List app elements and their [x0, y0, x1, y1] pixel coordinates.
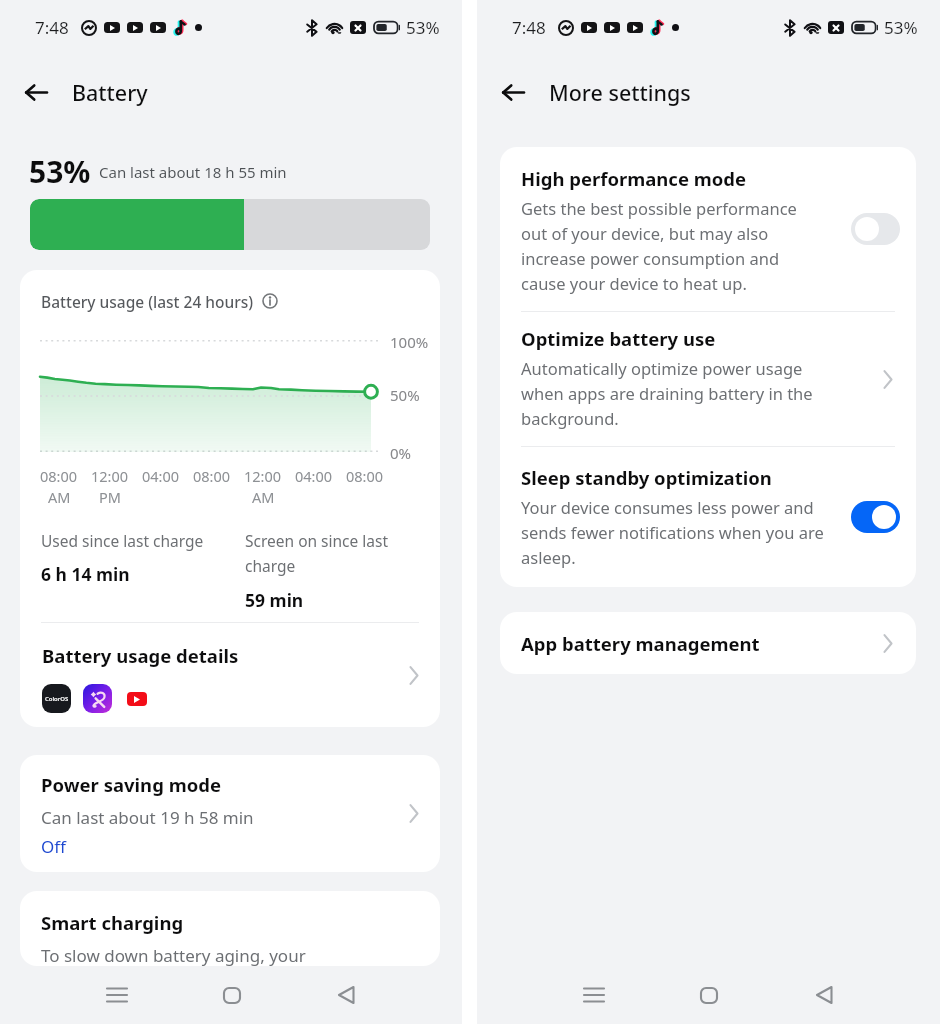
button[interactable]: Back	[502, 72, 536, 112]
button[interactable]: High performance mode	[500, 147, 916, 311]
staticText: Sleep standby optimization	[521, 465, 772, 490]
staticText: Optimize battery use	[521, 326, 716, 351]
button[interactable]: Toggle off	[851, 213, 900, 245]
button[interactable]: Power saving mode	[20, 755, 440, 872]
staticText: To slow down battery aging, your	[41, 944, 306, 966]
staticText: 59 min	[245, 588, 304, 612]
staticText: AM	[252, 487, 275, 507]
staticText: Battery usage details	[42, 643, 239, 668]
staticText: ColorOS	[45, 695, 69, 703]
staticText: More settings	[549, 78, 691, 107]
staticText: 04:00	[295, 466, 333, 486]
staticText: 7:48	[35, 16, 69, 39]
button[interactable]: Back	[25, 72, 59, 112]
staticText: 53%	[29, 151, 91, 192]
staticText: Screen on since last charge	[245, 530, 389, 577]
staticText: 04:00	[142, 466, 180, 486]
staticText: Off	[41, 835, 66, 858]
staticText: Power saving mode	[41, 772, 221, 797]
staticText: 08:00	[40, 466, 78, 486]
button[interactable]: Battery usage details	[20, 623, 440, 727]
staticText: 12:00	[91, 466, 129, 486]
staticText: Can last about 18 h 55 min	[99, 162, 287, 182]
staticText: Gets the best possible performance out o…	[521, 197, 797, 294]
button[interactable]: Recents	[94, 972, 140, 1018]
staticText: 08:00	[193, 466, 231, 486]
staticText: Automatically optimize power usage when …	[521, 357, 813, 429]
staticText: 50%	[390, 385, 420, 405]
button[interactable]: Sleep standby optimization	[500, 447, 916, 587]
staticText: Smart charging	[41, 910, 184, 935]
staticText: Battery	[72, 78, 148, 107]
staticText: 53%	[884, 16, 918, 39]
staticText: 6 h 14 min	[41, 562, 130, 586]
staticText: 7:48	[512, 16, 546, 39]
staticText: AM	[48, 487, 71, 507]
staticText: 08:00	[346, 466, 384, 486]
staticText: 100%	[390, 332, 429, 352]
button[interactable]: Home	[686, 972, 732, 1018]
staticText: App battery management	[521, 631, 760, 656]
staticText: 12:00	[244, 466, 282, 486]
staticText: 53%	[406, 16, 440, 39]
button[interactable]: Smart charging	[20, 891, 440, 966]
button[interactable]: App battery management	[500, 612, 916, 674]
button[interactable]: Back	[801, 972, 847, 1018]
button[interactable]: Toggle on	[851, 501, 900, 533]
button[interactable]: Recents	[571, 972, 617, 1018]
button[interactable]: Back	[323, 972, 369, 1018]
staticText: Used since last charge	[41, 530, 204, 551]
staticText: Battery usage (last 24 hours)	[41, 291, 254, 312]
button[interactable]: Optimize battery use	[500, 312, 916, 446]
button[interactable]: Home	[209, 972, 255, 1018]
staticText: Can last about 19 h 58 min	[41, 806, 254, 829]
staticText: 0%	[390, 443, 412, 463]
staticText: High performance mode	[521, 166, 747, 191]
staticText: PM	[99, 487, 121, 507]
staticText: Your device consumes less power and send…	[521, 496, 824, 568]
